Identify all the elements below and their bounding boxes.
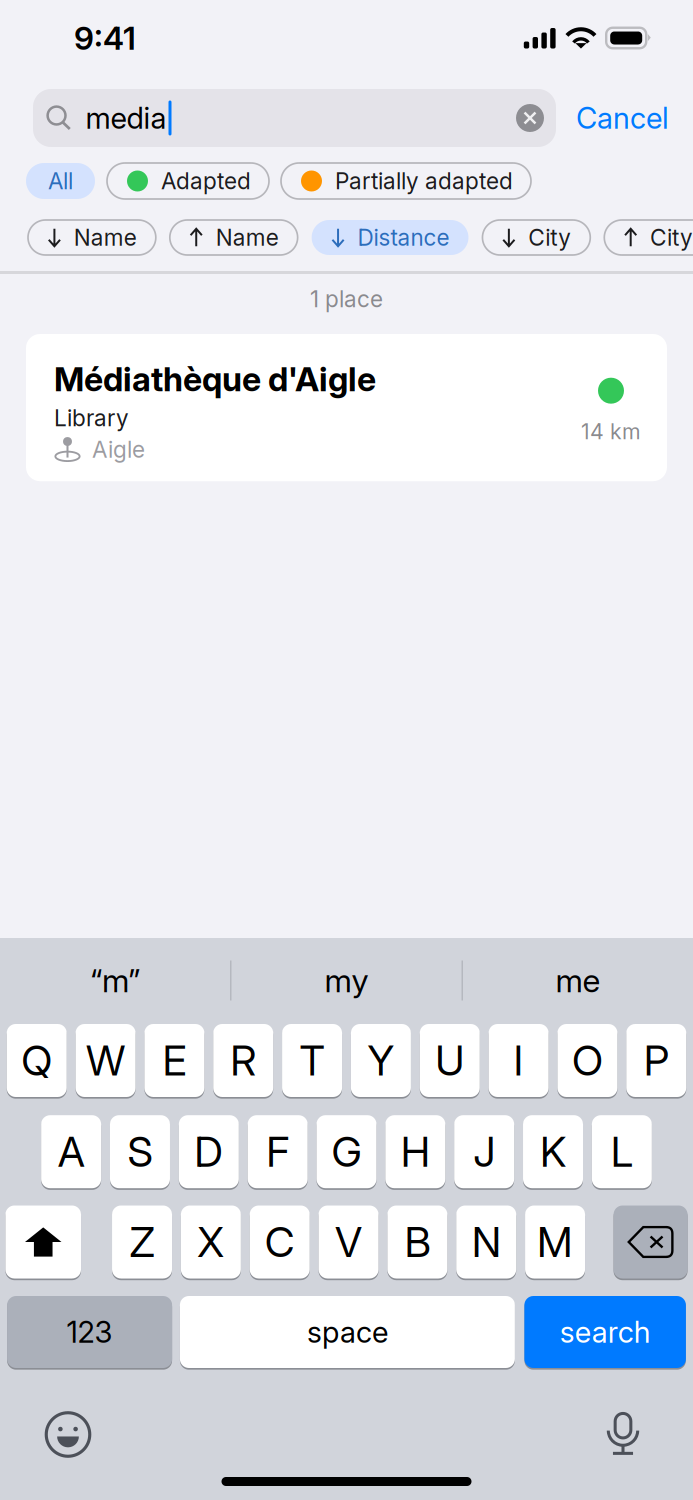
staticText: U bbox=[435, 1035, 464, 1085]
button[interactable]: S bbox=[110, 1114, 170, 1189]
staticText: P bbox=[644, 1035, 669, 1085]
button[interactable]: I bbox=[489, 1023, 549, 1098]
button[interactable]: W bbox=[76, 1023, 136, 1098]
button[interactable]: Médiathèque d'Aigle bbox=[26, 334, 667, 481]
button[interactable]: A bbox=[41, 1114, 101, 1189]
button[interactable]: B bbox=[387, 1204, 447, 1279]
button[interactable]: L bbox=[592, 1114, 652, 1189]
button[interactable]: Distance bbox=[312, 220, 468, 255]
staticText: D bbox=[194, 1127, 223, 1177]
staticText: G bbox=[331, 1127, 361, 1177]
staticText: space bbox=[307, 1314, 388, 1350]
staticText: J bbox=[473, 1127, 495, 1177]
staticText: B bbox=[404, 1217, 430, 1267]
button[interactable]: City bbox=[482, 220, 590, 255]
staticText: E bbox=[162, 1035, 186, 1085]
staticText: R bbox=[230, 1035, 256, 1085]
button[interactable]: U bbox=[420, 1023, 480, 1098]
button[interactable]: R bbox=[213, 1023, 273, 1098]
staticText: X bbox=[197, 1217, 224, 1267]
staticText: 1 place bbox=[310, 285, 383, 313]
button[interactable]: H bbox=[385, 1114, 445, 1189]
staticText: Library bbox=[54, 404, 129, 432]
staticText: A bbox=[58, 1127, 85, 1177]
button[interactable]: K bbox=[523, 1114, 583, 1189]
button[interactable]: J bbox=[454, 1114, 514, 1189]
button[interactable]: Delete bbox=[614, 1204, 688, 1279]
staticText: 14 km bbox=[581, 419, 641, 444]
button[interactable]: D bbox=[179, 1114, 239, 1189]
button[interactable]: Z bbox=[112, 1204, 172, 1279]
button[interactable]: Y bbox=[351, 1023, 411, 1098]
staticText: Aigle bbox=[92, 436, 145, 463]
button[interactable]: Q bbox=[7, 1023, 67, 1098]
staticText: All bbox=[48, 167, 73, 195]
button[interactable]: All bbox=[26, 163, 95, 199]
staticText: City bbox=[528, 224, 571, 251]
button[interactable]: “m” bbox=[0, 938, 230, 1023]
button[interactable]: O bbox=[557, 1023, 617, 1098]
staticText: media bbox=[85, 100, 166, 136]
staticText: Cancel bbox=[576, 100, 669, 136]
button[interactable]: Name bbox=[28, 220, 156, 255]
button[interactable]: me bbox=[463, 938, 693, 1023]
button[interactable]: C bbox=[250, 1204, 310, 1279]
button[interactable]: Cancel bbox=[556, 89, 683, 147]
button[interactable]: G bbox=[316, 1114, 376, 1189]
staticText: M bbox=[537, 1217, 573, 1267]
button[interactable]: space bbox=[180, 1295, 515, 1369]
staticText: Z bbox=[129, 1217, 154, 1267]
staticText: Q bbox=[21, 1035, 52, 1085]
staticText: Y bbox=[367, 1035, 394, 1085]
button[interactable]: T bbox=[282, 1023, 342, 1098]
staticText: Distance bbox=[357, 224, 449, 251]
staticText: H bbox=[401, 1127, 430, 1177]
button[interactable]: X bbox=[181, 1204, 241, 1279]
staticText: N bbox=[472, 1217, 501, 1267]
staticText: Name bbox=[216, 224, 279, 251]
staticText: V bbox=[335, 1217, 362, 1267]
staticText: I bbox=[514, 1035, 524, 1085]
staticText: Partially adapted bbox=[335, 167, 513, 195]
staticText: S bbox=[127, 1127, 152, 1177]
staticText: search bbox=[560, 1314, 651, 1350]
button[interactable]: Name bbox=[170, 220, 298, 255]
staticText: F bbox=[266, 1127, 289, 1177]
staticText: my bbox=[324, 961, 368, 1000]
button[interactable]: M bbox=[525, 1204, 585, 1279]
button[interactable]: my bbox=[231, 938, 461, 1023]
staticText: Name bbox=[74, 224, 137, 251]
staticText: City bbox=[650, 224, 693, 251]
button[interactable]: Adapted bbox=[107, 163, 269, 199]
button[interactable]: Partially adapted bbox=[281, 163, 531, 199]
staticText: W bbox=[86, 1035, 125, 1085]
staticText: L bbox=[611, 1127, 633, 1177]
button[interactable]: V bbox=[319, 1204, 379, 1279]
button[interactable]: Emoji keyboard bbox=[20, 1369, 116, 1500]
button[interactable]: Dictation bbox=[573, 1369, 673, 1500]
staticText: Adapted bbox=[161, 167, 251, 195]
button[interactable]: Shift bbox=[5, 1204, 81, 1279]
staticText: “m” bbox=[90, 961, 140, 1000]
button[interactable]: N bbox=[456, 1204, 516, 1279]
button[interactable]: P bbox=[626, 1023, 686, 1098]
staticText: T bbox=[300, 1035, 325, 1085]
button[interactable]: 123 bbox=[7, 1295, 172, 1369]
staticText: K bbox=[540, 1127, 566, 1177]
button[interactable]: search bbox=[524, 1295, 686, 1369]
button[interactable]: E bbox=[144, 1023, 204, 1098]
button[interactable]: F bbox=[248, 1114, 308, 1189]
button[interactable]: City bbox=[604, 220, 693, 255]
staticText: O bbox=[572, 1035, 603, 1085]
staticText: 123 bbox=[67, 1314, 113, 1350]
staticText: C bbox=[265, 1217, 295, 1267]
staticText: 9:41 bbox=[74, 19, 136, 57]
staticText: Médiathèque d'Aigle bbox=[54, 359, 376, 399]
staticText: me bbox=[555, 961, 600, 1000]
